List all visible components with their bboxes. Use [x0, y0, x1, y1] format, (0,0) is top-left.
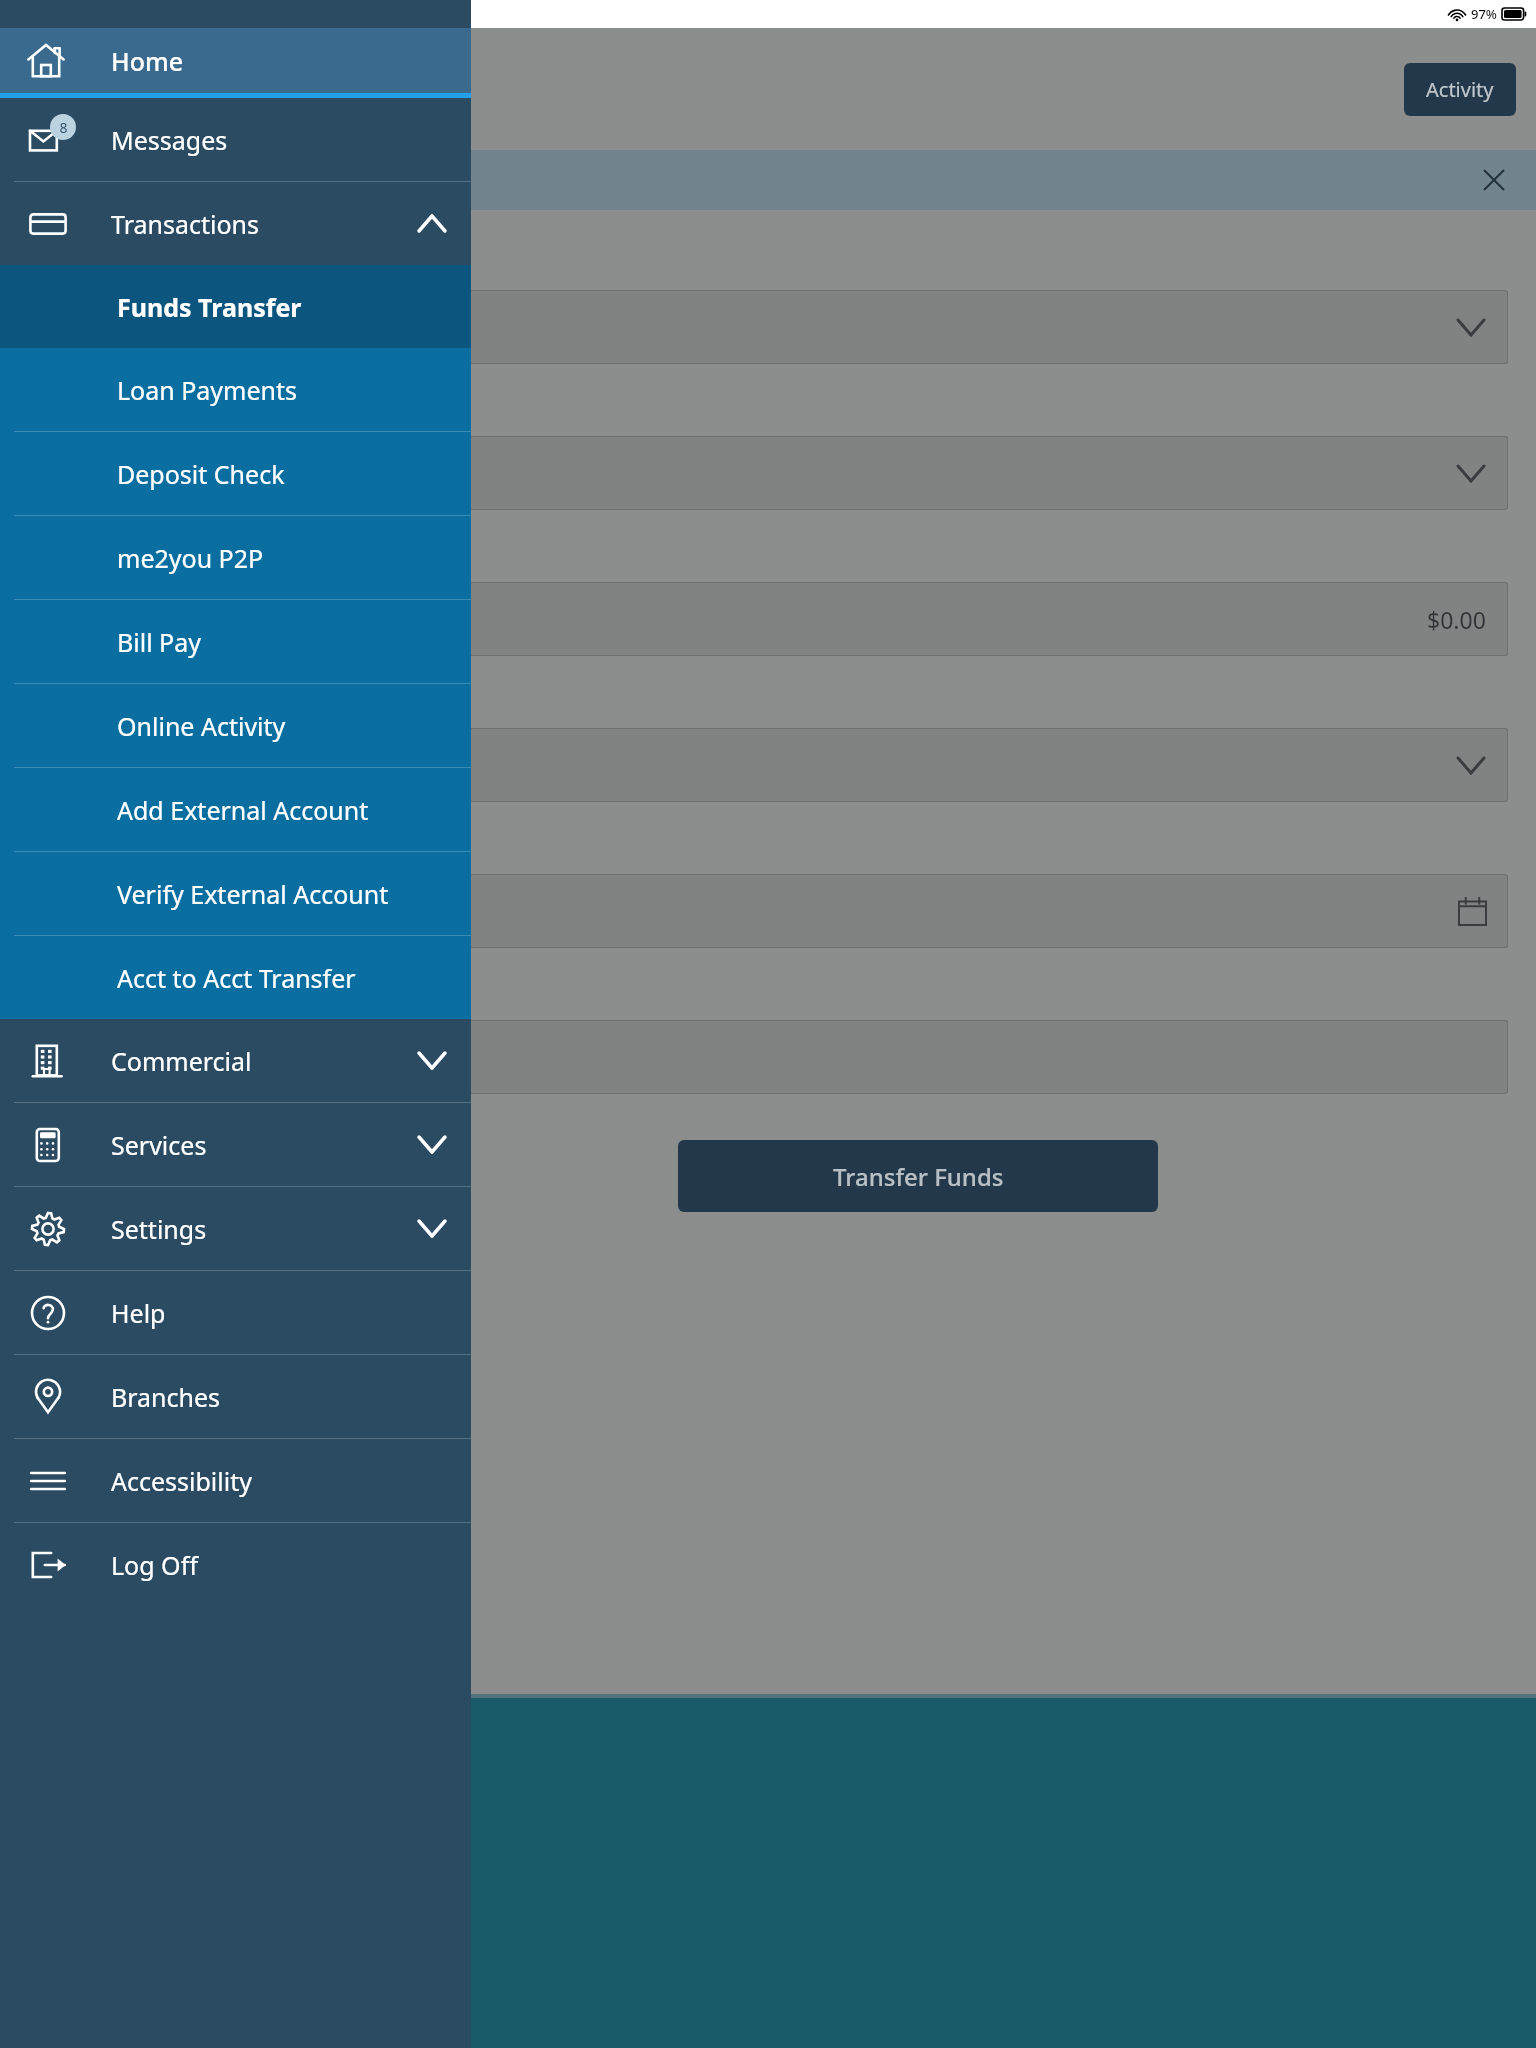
button[interactable]: 8: [0, 98, 471, 181]
button[interactable]: Deposit Check: [0, 432, 471, 515]
staticText: Memo (optional): [30, 984, 178, 1010]
staticText: Funds Transfer: [117, 290, 302, 324]
staticText: Online Activity: [117, 709, 286, 743]
staticText: Home: [111, 44, 184, 78]
button[interactable]: Accessibility: [0, 1439, 471, 1522]
staticText: Commercial: [111, 1044, 252, 1078]
staticText: Messages: [111, 123, 228, 157]
button[interactable]: Online Activity: [0, 684, 471, 767]
staticText: Welcome to our new convenience banking!: [30, 167, 413, 193]
staticText: Letters and numbers only: [46, 1043, 300, 1072]
button[interactable]: Loan Payments: [0, 348, 471, 431]
button[interactable]: Home: [0, 28, 471, 93]
staticText: Settings: [111, 1212, 207, 1246]
staticText: Branches: [111, 1380, 221, 1414]
staticText: 97%: [1471, 5, 1497, 23]
button[interactable]: Transfer Funds: [678, 1140, 1158, 1212]
button[interactable]: [28, 874, 1508, 948]
button[interactable]: me2you P2P: [0, 516, 471, 599]
staticText: Deposit Check: [117, 457, 285, 491]
staticText: Acct to Acct Transfer: [117, 961, 356, 995]
staticText: Log Off: [111, 1548, 198, 1582]
button[interactable]: Funds Transfer: [0, 265, 471, 348]
staticText: Bill Pay: [117, 625, 202, 659]
staticText: me2you P2P: [117, 541, 264, 575]
button[interactable]: Letters and numbers only: [28, 1020, 1508, 1094]
staticText: Add External Account: [117, 793, 369, 827]
staticText: 8: [59, 118, 68, 137]
button[interactable]: Close banner: [1472, 158, 1516, 202]
button[interactable]: Commercial: [0, 1019, 471, 1102]
staticText: Accessibility: [111, 1464, 252, 1498]
button[interactable]: Settings: [0, 1187, 471, 1270]
button[interactable]: Transactions: [0, 182, 471, 265]
staticText: Activity: [1426, 76, 1494, 103]
button[interactable]: Verify External Account: [0, 852, 471, 935]
button[interactable]: Activity: [1404, 63, 1516, 116]
staticText: From Account: [30, 254, 154, 280]
button[interactable]: Log Off: [0, 1523, 471, 1606]
button[interactable]: Help: [0, 1271, 471, 1354]
staticText: Loan Payments: [117, 373, 298, 407]
staticText: Transfer Funds: [833, 1160, 1004, 1193]
button[interactable]: [28, 436, 1508, 510]
staticText: $0.00: [1427, 604, 1486, 635]
staticText: Services: [111, 1128, 207, 1162]
button[interactable]: $0.00: [28, 582, 1508, 656]
button[interactable]: Acct to Acct Transfer: [0, 936, 471, 1019]
button[interactable]: [28, 290, 1508, 364]
staticText: One Time Transfer: [46, 751, 229, 780]
staticText: Verify External Account: [117, 877, 389, 911]
button[interactable]: Branches: [0, 1355, 471, 1438]
button[interactable]: One Time Transfer: [28, 728, 1508, 802]
button[interactable]: Add External Account: [0, 768, 471, 851]
button[interactable]: Bill Pay: [0, 600, 471, 683]
staticText: Help: [111, 1296, 166, 1330]
staticText: Transactions: [111, 207, 259, 241]
button[interactable]: Services: [0, 1103, 471, 1186]
staticText: Transfer Date: [30, 838, 151, 864]
